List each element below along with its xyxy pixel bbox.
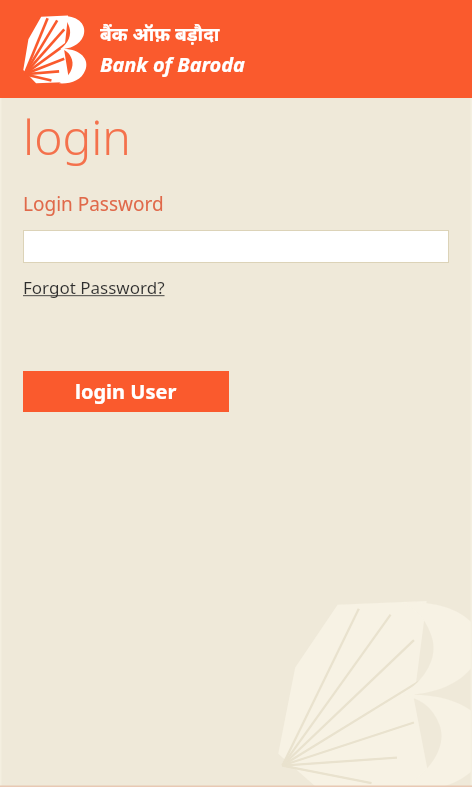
staticText: login User (75, 378, 177, 405)
button[interactable]: login User (23, 371, 229, 412)
button[interactable]: Forgot Password? (23, 276, 165, 299)
staticText: Bank of Baroda (100, 51, 245, 78)
staticText: बैंक ऑफ़ बड़ौदा (100, 21, 220, 47)
staticText: Forgot Password? (23, 276, 165, 299)
staticText: login (23, 104, 131, 169)
button[interactable]: Login password field (23, 230, 449, 263)
staticText: Login Password (23, 191, 164, 217)
